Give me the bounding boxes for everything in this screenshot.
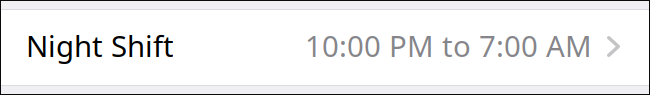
button[interactable]: Night Shift [0, 10, 650, 85]
staticText: 10:00 PM to 7:00 AM [305, 26, 592, 65]
staticText: Night Shift [26, 26, 174, 65]
